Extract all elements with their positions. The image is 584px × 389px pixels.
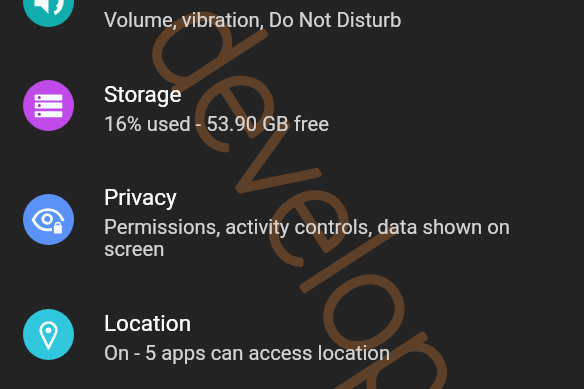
- button[interactable]: Location: [0, 302, 584, 378]
- staticText: Location: [104, 310, 192, 336]
- staticText: Storage: [104, 81, 182, 107]
- button[interactable]: Sound: [0, 0, 584, 45]
- staticText: Permissions, activity controls, data sho…: [104, 217, 529, 261]
- staticText: Volume, vibration, Do Not Disturb: [104, 10, 529, 32]
- staticText: On - 5 apps can access location: [104, 343, 529, 365]
- staticText: Privacy: [104, 184, 177, 210]
- button[interactable]: Storage: [0, 73, 584, 149]
- staticText: 16% used - 53.90 GB free: [104, 114, 529, 136]
- button[interactable]: Privacy: [0, 176, 584, 279]
